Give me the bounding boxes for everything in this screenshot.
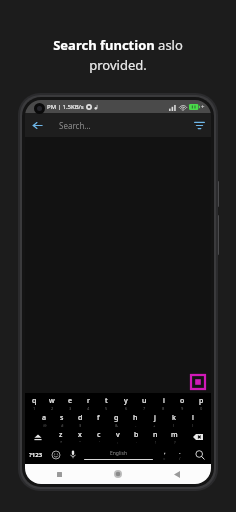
button[interactable]: Search <box>188 447 211 462</box>
staticText: a <box>42 413 47 423</box>
button[interactable]: h <box>126 413 145 427</box>
button[interactable]: t <box>97 396 116 410</box>
staticText: * <box>60 440 63 444</box>
staticText: @ <box>43 423 47 427</box>
button[interactable]: Back <box>25 113 49 137</box>
button[interactable]: m <box>165 430 184 444</box>
button[interactable]: , <box>156 447 172 462</box>
staticText: English <box>110 450 128 457</box>
button[interactable]: i <box>154 396 173 410</box>
button[interactable]: k <box>164 413 183 427</box>
staticText: f <box>97 413 100 423</box>
staticText: z <box>59 430 63 440</box>
staticText: $ <box>79 423 82 427</box>
staticText: d <box>78 413 83 423</box>
button[interactable]: q <box>25 396 43 410</box>
button[interactable]: Backspace <box>184 430 211 444</box>
button[interactable]: j <box>145 413 164 427</box>
staticText: + <box>153 423 156 427</box>
button[interactable]: Back <box>169 466 185 482</box>
staticText: 3 <box>69 406 72 410</box>
staticText: / <box>179 456 181 461</box>
staticText: t <box>105 396 108 406</box>
button[interactable]: . <box>172 447 188 462</box>
staticText: " <box>79 440 81 444</box>
staticText: . <box>179 448 181 456</box>
button[interactable]: r <box>79 396 97 410</box>
staticText: u <box>142 396 147 406</box>
staticText: s <box>60 413 64 423</box>
staticText: ; <box>136 440 138 444</box>
staticText: j <box>154 413 156 423</box>
staticText: = <box>163 456 166 461</box>
button[interactable]: g <box>107 413 126 427</box>
staticText: , <box>164 448 166 456</box>
staticText: q <box>32 396 37 406</box>
staticText: c <box>97 430 101 440</box>
button[interactable]: w <box>43 396 61 410</box>
staticText: 8 <box>162 406 165 410</box>
staticText: 7 <box>143 406 146 410</box>
button[interactable]: English <box>81 447 156 462</box>
button[interactable]: n <box>146 430 165 444</box>
staticText: x <box>78 430 82 440</box>
staticText: k <box>172 413 176 423</box>
staticText: w <box>49 396 55 406</box>
staticText: : <box>117 440 119 444</box>
staticText: ' <box>99 440 100 444</box>
staticText: b <box>134 430 139 440</box>
staticText: provided. <box>89 56 147 74</box>
staticText: 6 <box>125 406 128 410</box>
staticText: PM | 1.5KB/s <box>47 103 84 111</box>
button[interactable]: y <box>116 396 135 410</box>
staticText: ! <box>155 440 157 444</box>
staticText: 5 <box>105 406 108 410</box>
button[interactable]: Search... <box>49 113 187 137</box>
staticText: ( <box>173 423 175 427</box>
button[interactable]: f <box>89 413 107 427</box>
staticText: 4 <box>87 406 90 410</box>
staticText: h <box>133 413 138 423</box>
button[interactable]: Voice input <box>64 447 81 462</box>
staticText: i <box>163 396 165 406</box>
staticText: Search... <box>59 120 91 131</box>
button[interactable]: Shift <box>25 430 51 444</box>
button[interactable]: Stop <box>191 375 205 389</box>
staticText: m <box>171 430 178 440</box>
staticText: # <box>61 423 64 427</box>
staticText: 2 <box>51 406 54 410</box>
button[interactable]: p <box>192 396 211 410</box>
staticText: 0 <box>200 406 203 410</box>
button[interactable]: Filter <box>187 113 211 137</box>
button[interactable]: Recents <box>51 466 67 482</box>
button[interactable]: a <box>35 413 53 427</box>
button[interactable]: b <box>127 430 146 444</box>
button[interactable]: l <box>183 413 202 427</box>
button[interactable]: z <box>51 430 70 444</box>
staticText: y <box>124 396 128 406</box>
button[interactable]: o <box>173 396 192 410</box>
staticText: ?123 <box>29 451 43 459</box>
button[interactable]: Emoji <box>47 447 64 462</box>
staticText: & <box>115 423 118 427</box>
button[interactable]: e <box>61 396 79 410</box>
button[interactable]: s <box>53 413 71 427</box>
staticText: n <box>153 430 158 440</box>
staticText: o <box>180 396 185 406</box>
staticText: e <box>68 396 73 406</box>
staticText: - <box>135 423 137 427</box>
staticText: p <box>199 396 204 406</box>
staticText: 1 <box>33 406 36 410</box>
button[interactable]: d <box>71 413 89 427</box>
button[interactable]: Home <box>110 466 126 482</box>
button[interactable]: v <box>108 430 127 444</box>
button[interactable]: x <box>70 430 89 444</box>
button[interactable]: u <box>135 396 154 410</box>
staticText: v <box>116 430 120 440</box>
staticText: l <box>192 413 194 423</box>
staticText: 9 <box>181 406 184 410</box>
button[interactable]: c <box>89 430 108 444</box>
staticText: Search function aslo <box>53 36 183 54</box>
button[interactable]: ?123 <box>25 447 47 462</box>
